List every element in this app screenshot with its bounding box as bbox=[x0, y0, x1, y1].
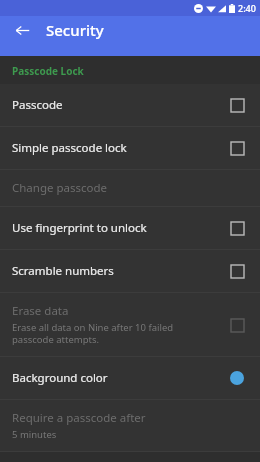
button[interactable]: Erase data bbox=[0, 293, 260, 356]
staticText: Background color bbox=[12, 370, 108, 386]
button[interactable]: Toggle bbox=[226, 137, 248, 159]
button[interactable]: Passcode bbox=[0, 84, 260, 126]
button[interactable]: Scramble numbers bbox=[0, 250, 260, 292]
button[interactable]: Change passcode bbox=[0, 170, 260, 206]
staticText: Erase all data on Nine after 10 failed p… bbox=[12, 321, 174, 346]
button[interactable]: Toggle bbox=[226, 94, 248, 116]
staticText: Simple passcode lock bbox=[12, 140, 127, 156]
staticText: Use fingerprint to unlock bbox=[12, 220, 147, 236]
staticText: Security bbox=[46, 20, 104, 40]
staticText: Change passcode bbox=[12, 180, 108, 196]
button[interactable]: Require a passcode after bbox=[0, 400, 260, 451]
button[interactable]: Toggle bbox=[226, 314, 248, 336]
button[interactable]: Simple passcode lock bbox=[0, 127, 260, 169]
button[interactable]: Toggle bbox=[226, 217, 248, 239]
staticText: Passcode Lock bbox=[12, 64, 84, 78]
button[interactable]: Toggle bbox=[226, 260, 248, 282]
button[interactable]: Use fingerprint to unlock bbox=[0, 207, 260, 249]
staticText: Passcode bbox=[12, 97, 63, 113]
staticText: 2:40 bbox=[238, 2, 256, 14]
staticText: Require a passcode after bbox=[12, 410, 146, 426]
staticText: Erase data bbox=[12, 303, 69, 319]
staticText: 5 minutes bbox=[12, 428, 57, 441]
button[interactable]: Background color bbox=[0, 357, 260, 399]
staticText: Scramble numbers bbox=[12, 263, 114, 279]
button[interactable]: Back bbox=[8, 16, 36, 44]
button[interactable]: Background color bbox=[226, 367, 248, 389]
